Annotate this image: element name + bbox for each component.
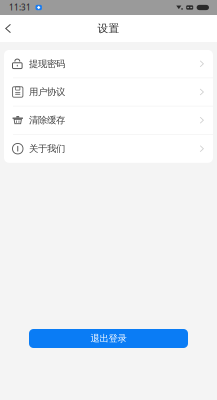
staticText: 关于我们 — [29, 143, 65, 154]
staticText: 提现密码 — [29, 58, 65, 70]
button[interactable]: 清除缓存 — [4, 106, 213, 135]
staticText: 11:31 — [9, 2, 31, 13]
button[interactable]: 用户协议 — [4, 78, 213, 106]
button[interactable]: 提现密码 — [4, 50, 213, 78]
staticText: 退出登录 — [90, 333, 126, 344]
button[interactable]: 退出登录 — [0, 329, 217, 348]
button[interactable]: 关于我们 — [4, 135, 213, 163]
staticText: 设置 — [97, 22, 119, 35]
staticText: 清除缓存 — [29, 114, 65, 126]
button[interactable]: Back — [0, 17, 19, 40]
staticText: 用户协议 — [29, 86, 65, 98]
